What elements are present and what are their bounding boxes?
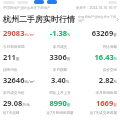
button[interactable]: -1.38% (41, 28, 79, 38)
staticText: 近7天成交房源量 (79, 110, 117, 115)
staticText: 1669套 (79, 98, 117, 108)
staticText: 8990套 (41, 98, 79, 108)
staticText: 211套 (3, 52, 41, 62)
staticText: 中国房地产业协会房天下房地产 (3, 6, 51, 10)
staticText: 更新于：2024-10-16 10:17 (76, 5, 117, 10)
staticText: 近7天挂牌 (3, 110, 41, 115)
staticText: 同比上月上升 (41, 91, 79, 96)
button[interactable]: 环比涨幅 (79, 45, 117, 62)
staticText: 16.43% (79, 52, 117, 62)
staticText: 3.40% (41, 75, 79, 85)
staticText: 32646元/m² (3, 75, 41, 85)
button[interactable]: 更多 (108, 1, 117, 4)
staticText: 本月成交 (41, 45, 79, 50)
button[interactable]: 本月成交 (41, 45, 79, 62)
staticText: 环比涨幅 (79, 45, 117, 50)
staticText: 中国房地产业协会房天下房地产 (78, 15, 117, 23)
staticText: 议价空间 (79, 68, 117, 73)
button[interactable]: 29083元/m² (3, 28, 41, 38)
staticText: 今日新增房源 (3, 45, 41, 50)
staticText: 挂牌均价 (3, 68, 41, 73)
staticText: 2.82% (79, 75, 117, 85)
staticText: 本月新增房源 (79, 91, 117, 96)
button[interactable]: 标签二 (47, 0, 57, 4)
staticText: 29.08万元 (3, 98, 41, 108)
staticText: 3306套 (41, 52, 79, 62)
button[interactable]: 筛选 (3, 1, 15, 4)
staticText: 杭州二手房实时行情 (3, 14, 75, 24)
button[interactable]: 议价空间 (79, 68, 117, 85)
button[interactable]: 杭州二手房实时行情 (3, 14, 117, 24)
staticText: 本月成交均价 (3, 91, 41, 96)
button[interactable]: 63269套 (79, 28, 117, 38)
staticText: 本月跌幅 (41, 68, 79, 73)
button[interactable]: 本月新增房源 (79, 91, 117, 108)
staticText: 近7天新增房源量 (41, 110, 79, 115)
button[interactable]: 标签一 (34, 0, 44, 4)
button[interactable]: 挂牌均价 (3, 68, 41, 85)
button[interactable]: 今日新增房源 (3, 45, 41, 62)
button[interactable]: 同比上月上升 (41, 91, 79, 108)
button[interactable]: 本月成交均价 (3, 91, 41, 108)
button[interactable]: 本月跌幅 (41, 68, 79, 85)
button[interactable]: 区域 (17, 1, 28, 4)
